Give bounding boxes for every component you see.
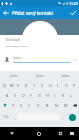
staticText: F: [30, 93, 32, 98]
staticText: E: [17, 83, 20, 88]
button[interactable]: U: [46, 80, 54, 90]
staticText: Účet Google: [5, 38, 20, 42]
button[interactable]: A: [4, 90, 11, 100]
button[interactable]: F: [27, 90, 35, 100]
button[interactable]: M: [61, 100, 70, 110]
staticText: O: [65, 83, 68, 88]
staticText: L: [70, 93, 72, 98]
button[interactable]: Backspace: [70, 100, 79, 110]
staticText: A: [6, 93, 9, 98]
staticText: S: [14, 93, 17, 98]
staticText: D: [22, 93, 25, 98]
staticText: Jmeno: [36, 74, 44, 78]
staticText: ,: [15, 115, 16, 120]
button[interactable]: J: [51, 90, 59, 100]
button[interactable]: L: [67, 90, 75, 100]
staticText: Přidat nový kontakt: [12, 10, 54, 16]
button[interactable]: Shift: [0, 100, 9, 110]
staticText: Jména: [62, 74, 70, 78]
button[interactable]: N: [52, 100, 61, 110]
button[interactable]: I: [54, 80, 62, 90]
staticText: P: [73, 83, 76, 88]
button[interactable]: Switch keyboard: [66, 127, 78, 140]
staticText: K: [62, 93, 65, 98]
button[interactable]: P: [70, 80, 78, 90]
staticText: Q: [3, 83, 6, 88]
staticText: I: [57, 83, 59, 88]
button[interactable]: K: [59, 90, 67, 100]
button[interactable]: Comma: [12, 111, 18, 123]
staticText: Y: [12, 103, 15, 108]
staticText: N: [55, 103, 58, 108]
staticText: H: [46, 93, 49, 98]
button[interactable]: G: [35, 90, 43, 100]
staticText: Jméno: [10, 74, 18, 78]
button[interactable]: C: [25, 100, 34, 110]
button[interactable]: Enter: [66, 111, 79, 123]
button[interactable]: Jmeno: [27, 71, 53, 80]
staticText: G: [38, 93, 41, 98]
button[interactable]: H: [43, 90, 51, 100]
staticText: B: [46, 103, 49, 108]
button[interactable]: R: [22, 80, 30, 90]
staticText: T: [33, 83, 36, 88]
button[interactable]: Expand name fields: [70, 51, 79, 69]
button[interactable]: Symbols: [0, 111, 12, 123]
button[interactable]: T: [30, 80, 38, 90]
staticText: V: [37, 103, 40, 108]
button[interactable]: Back: [0, 6, 11, 19]
staticText: W: [10, 83, 14, 88]
staticText: ?1☺: [3, 115, 9, 119]
button[interactable]: O: [62, 80, 70, 90]
staticText: U: [49, 83, 52, 88]
button[interactable]: Home: [33, 127, 45, 140]
staticText: R: [25, 83, 28, 88]
button[interactable]: S: [11, 90, 19, 100]
staticText: X: [20, 103, 23, 108]
button[interactable]: B: [43, 100, 52, 110]
button[interactable]: V: [34, 100, 43, 110]
button[interactable]: Add photo: [22, 21, 58, 57]
staticText: C: [28, 103, 31, 108]
staticText: Jméno: [13, 56, 22, 60]
button[interactable]: Z: [38, 80, 46, 90]
button[interactable]: Back: [6, 127, 18, 140]
staticText: M: [64, 103, 68, 108]
button[interactable]: Save contact: [67, 6, 78, 19]
button[interactable]: D: [19, 90, 27, 100]
staticText: .: [63, 115, 64, 120]
staticText: J: [54, 93, 56, 98]
button[interactable]: Y: [9, 100, 17, 110]
button[interactable]: Q: [1, 80, 8, 90]
button[interactable]: Recent apps: [54, 127, 66, 140]
button[interactable]: E: [15, 80, 22, 90]
staticText: 11:23: [69, 1, 78, 6]
button[interactable]: X: [17, 100, 25, 110]
button[interactable]: W: [8, 80, 15, 90]
staticText: novakjan@gmail.com: [5, 44, 30, 47]
button[interactable]: Jména: [53, 71, 79, 80]
button[interactable]: Jméno: [0, 71, 27, 80]
button[interactable]: Účet Google: [0, 35, 79, 49]
staticText: Z: [41, 83, 44, 88]
